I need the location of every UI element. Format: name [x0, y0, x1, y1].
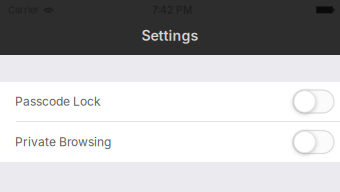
button[interactable]: Passcode Lock — [0, 82, 340, 122]
staticText: 7:42 PM — [152, 4, 192, 16]
staticText: Carrier — [8, 4, 39, 16]
button[interactable]: Private Browsing — [0, 122, 340, 162]
staticText: Passcode Lock — [15, 94, 101, 109]
staticText: Private Browsing — [15, 135, 111, 149]
staticText: Settings — [141, 27, 198, 44]
